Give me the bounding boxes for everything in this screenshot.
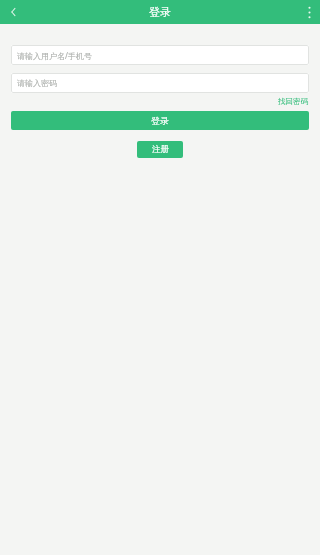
staticText: 请输入用户名/手机号: [17, 50, 92, 61]
button[interactable]: 请输入密码: [11, 73, 309, 93]
staticText: 登录: [151, 115, 169, 126]
button[interactable]: 登录: [11, 111, 309, 130]
staticText: 请输入密码: [17, 78, 57, 88]
button[interactable]: Back: [0, 0, 28, 24]
button[interactable]: 找回密码: [277, 96, 309, 107]
staticText: 找回密码: [278, 97, 308, 106]
button[interactable]: 请输入用户名/手机号: [11, 45, 309, 65]
staticText: 注册: [152, 144, 169, 155]
button[interactable]: 注册: [137, 141, 183, 158]
button[interactable]: More options: [298, 0, 320, 24]
staticText: 登录: [149, 5, 171, 19]
